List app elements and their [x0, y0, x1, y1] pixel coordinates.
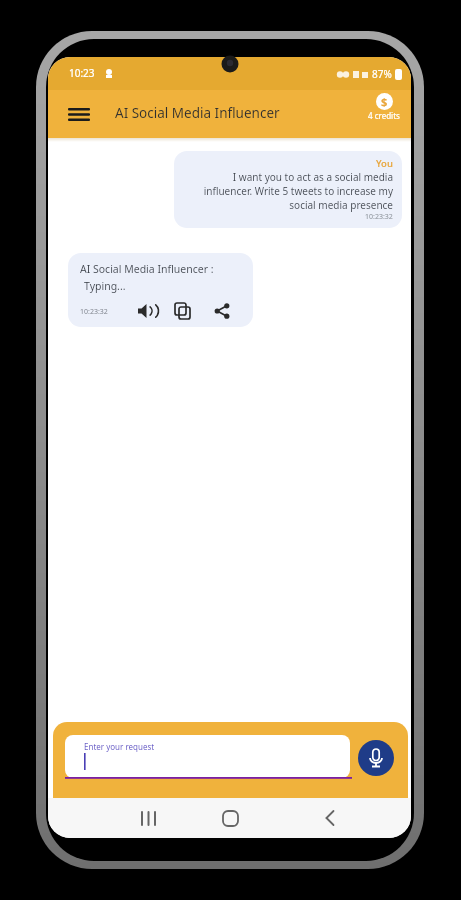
staticText: You — [376, 157, 393, 170]
button[interactable] — [137, 302, 155, 320]
button[interactable] — [60, 100, 98, 128]
staticText: AI Social Media Influencer : — [80, 262, 214, 276]
button[interactable] — [214, 303, 230, 319]
staticText: Enter your request — [84, 741, 155, 752]
button[interactable] — [128, 798, 168, 838]
staticText: Typing... — [84, 279, 126, 293]
staticText: 87% — [372, 67, 392, 81]
staticText: AI Social Media Influencer — [115, 104, 280, 122]
button[interactable]: Enter your request — [65, 735, 350, 778]
staticText: I want you to act as a social media infl… — [203, 170, 393, 212]
button[interactable] — [210, 798, 250, 838]
button[interactable] — [358, 740, 394, 776]
staticText: $ — [381, 94, 388, 109]
button[interactable]: You — [174, 151, 402, 228]
staticText: 10:23 — [69, 66, 95, 80]
button[interactable] — [174, 302, 191, 319]
staticText: 10:23:32 — [365, 212, 393, 222]
button[interactable] — [310, 798, 350, 838]
button[interactable]: $ — [368, 93, 400, 121]
staticText: 10:23:32 — [80, 307, 108, 317]
staticText: 4 credits — [368, 110, 400, 121]
button[interactable]: AI Social Media Influencer : — [68, 253, 253, 327]
